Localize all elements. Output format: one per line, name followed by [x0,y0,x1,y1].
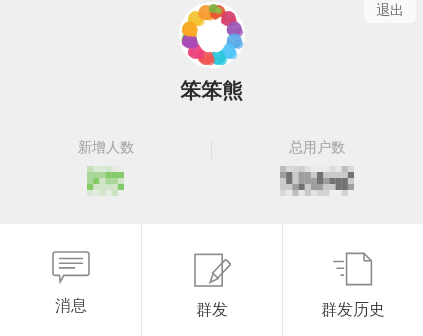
staticText: 消息 [55,296,87,316]
button[interactable]: 消息 [0,224,141,336]
staticText: 群发历史 [321,300,385,320]
button[interactable]: 群发历史 [283,224,423,336]
staticText: 群发 [196,300,228,320]
button[interactable]: 群发 [142,224,282,336]
button[interactable]: 退出 [364,0,416,23]
button[interactable]: 总用户数 [211,120,423,222]
staticText: 笨笨熊 [180,78,243,104]
staticText: 退出 [376,2,404,20]
staticText: 总用户数 [289,139,345,157]
button[interactable]: 新增人数 [0,120,211,222]
staticText: 新增人数 [78,139,134,157]
